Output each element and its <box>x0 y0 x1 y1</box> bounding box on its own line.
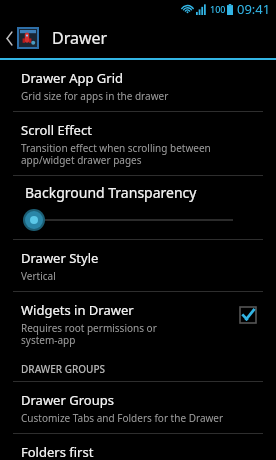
button[interactable]: Folders first <box>0 434 276 460</box>
staticText: Customize Tabs and Folders for the Drawe… <box>21 411 224 425</box>
button[interactable]: Background Transparency slider <box>0 205 276 235</box>
staticText: Drawer Groups <box>21 391 114 409</box>
button[interactable]: Scroll Effect <box>0 112 276 175</box>
button[interactable]: Widgets in Drawer <box>0 292 276 355</box>
staticText: 09:41 <box>237 0 271 18</box>
staticText: Background Transparency <box>25 183 197 202</box>
staticText: Drawer App Grid <box>21 69 124 87</box>
staticText: Transition effect when scrolling between… <box>21 141 211 167</box>
staticText: Widgets in Drawer <box>21 301 134 319</box>
staticText: Drawer <box>52 27 108 49</box>
button[interactable]: Drawer Groups <box>0 382 276 433</box>
staticText: Drawer Style <box>21 249 99 267</box>
staticText: Requires root permissions or system-app <box>21 321 157 347</box>
staticText: Scroll Effect <box>21 121 92 139</box>
staticText: Vertical <box>21 269 56 283</box>
staticText: Folders first <box>21 443 94 460</box>
staticText: 100 <box>210 3 226 15</box>
button[interactable]: Drawer App Grid <box>0 60 276 111</box>
staticText: Grid size for apps in the drawer <box>21 89 169 103</box>
staticText: DRAWER GROUPS <box>21 362 106 376</box>
button[interactable]: Back <box>0 18 43 58</box>
button[interactable]: Drawer Style <box>0 240 276 291</box>
